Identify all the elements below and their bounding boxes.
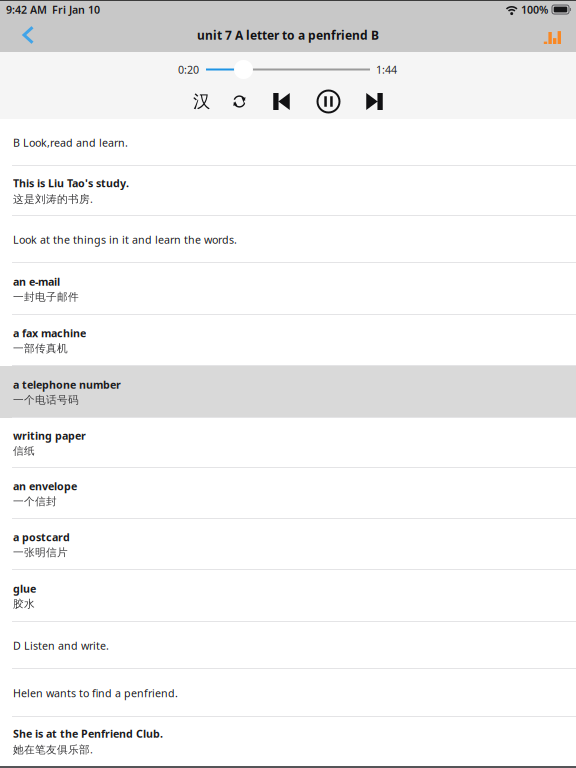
staticText: unit 7 A letter to a penfriend B [197, 27, 379, 43]
staticText: Look at the things in it and learn the w… [13, 232, 237, 247]
staticText: an e-mail [13, 275, 60, 289]
button[interactable]: Repeat [226, 87, 252, 115]
button[interactable]: Back [0, 18, 48, 52]
button[interactable]: She is at the Penfriend Club. [0, 717, 576, 766]
button[interactable]: a fax machine [0, 315, 576, 366]
staticText: writing paper [13, 429, 86, 443]
staticText: 一张明信片 [13, 546, 68, 559]
staticText: She is at the Penfriend Club. [13, 727, 163, 741]
staticText: a telephone number [13, 378, 121, 392]
staticText: 一封电子邮件 [13, 290, 79, 303]
button[interactable]: glue [0, 570, 576, 622]
staticText: glue [13, 582, 36, 596]
staticText: 9:42 AM [6, 2, 47, 17]
button[interactable]: Helen wants to find a penfriend. [0, 669, 576, 717]
staticText: 1:44 [376, 62, 397, 77]
button[interactable]: Previous [268, 87, 294, 115]
button[interactable]: B Look,read and learn. [0, 119, 576, 166]
staticText: a fax machine [13, 326, 86, 340]
button[interactable]: Next [361, 87, 387, 115]
button[interactable]: a postcard [0, 519, 576, 570]
staticText: 胶水 [13, 597, 35, 610]
button[interactable]: a telephone number [0, 366, 576, 418]
staticText: 一个信封 [13, 495, 57, 508]
staticText: This is Liu Tao's study. [13, 176, 129, 190]
button[interactable]: D Listen and write. [0, 622, 576, 669]
staticText: B Look,read and learn. [13, 135, 128, 150]
staticText: 信纸 [13, 444, 35, 457]
staticText: D Listen and write. [13, 638, 109, 653]
staticText: Helen wants to find a penfriend. [13, 686, 178, 700]
staticText: 汉 [193, 91, 210, 112]
staticText: 这是刘涛的书房. [13, 192, 93, 206]
button[interactable]: Look at the things in it and learn the w… [0, 216, 576, 263]
staticText: 一部传真机 [13, 342, 68, 355]
button[interactable]: an envelope [0, 468, 576, 519]
button[interactable]: Pause [315, 87, 341, 115]
button[interactable]: Chinese [188, 87, 214, 115]
staticText: an envelope [13, 479, 77, 493]
button[interactable]: Audio levels [530, 18, 576, 52]
button[interactable]: an e-mail [0, 263, 576, 315]
staticText: 一个电话号码 [13, 393, 79, 406]
button[interactable]: This is Liu Tao's study. [0, 166, 576, 216]
button[interactable]: writing paper [0, 418, 576, 468]
staticText: 她在笔友俱乐部. [13, 742, 93, 756]
staticText: a postcard [13, 530, 70, 544]
staticText: Fri Jan 10 [52, 2, 100, 17]
staticText: 100% [521, 2, 548, 17]
staticText: 0:20 [178, 62, 199, 77]
